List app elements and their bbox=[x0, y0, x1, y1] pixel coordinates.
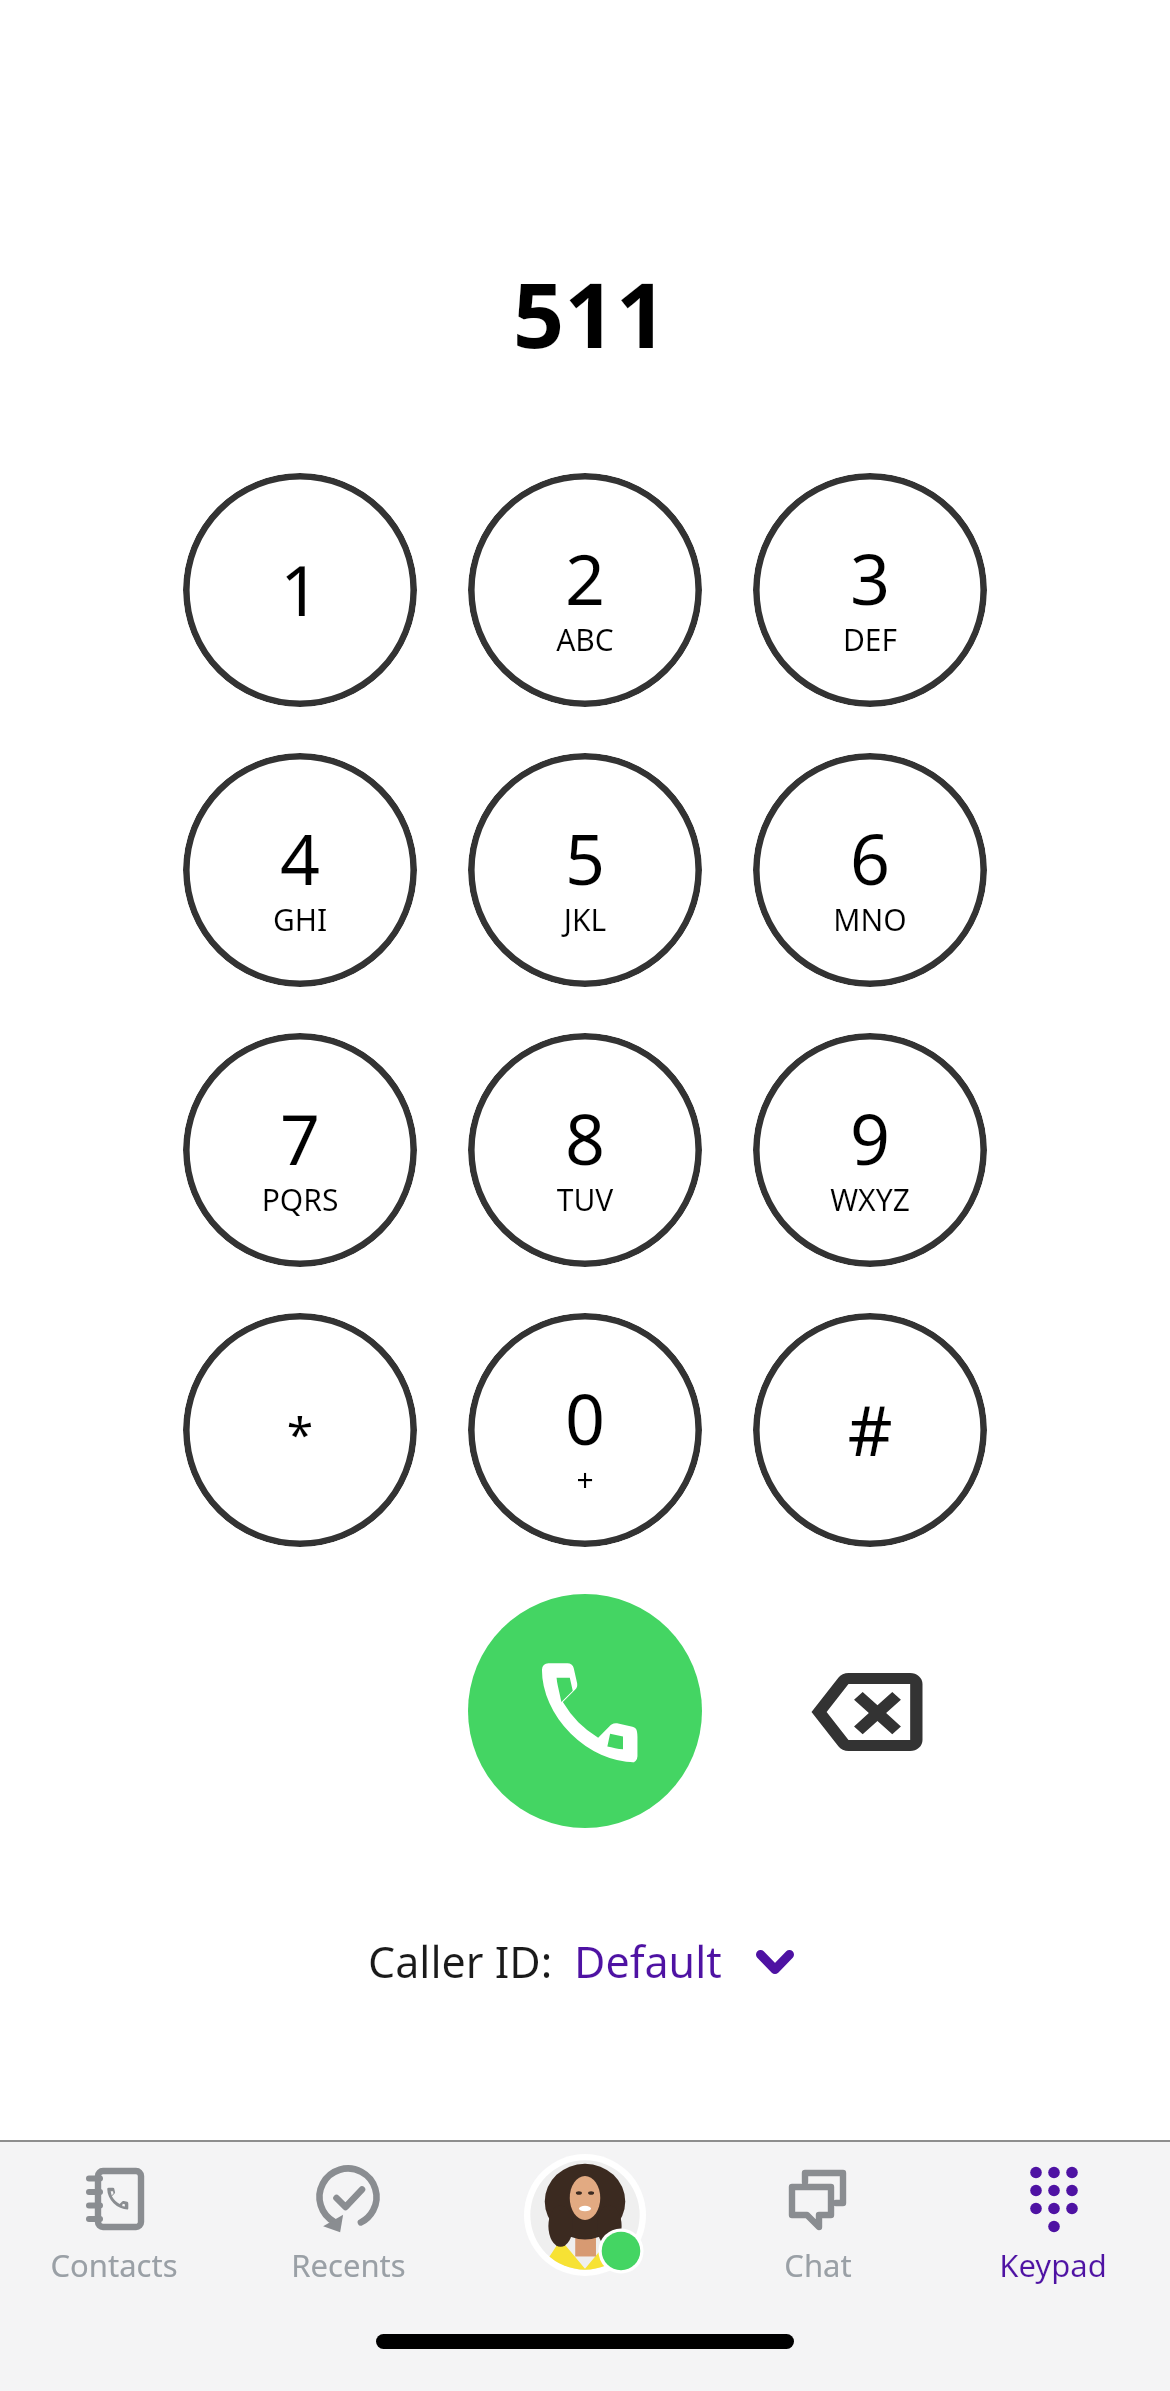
button[interactable]: Keypad bbox=[943, 2142, 1163, 2286]
button[interactable]: 6 bbox=[753, 753, 987, 987]
button[interactable]: Contacts bbox=[4, 2142, 224, 2286]
button[interactable]: 2 bbox=[468, 473, 702, 707]
staticText: 8 bbox=[468, 1090, 702, 1185]
button[interactable]: 1 bbox=[183, 473, 417, 707]
staticText: 5 bbox=[468, 810, 702, 905]
staticText: Contacts bbox=[50, 2244, 178, 2286]
staticText: Keypad bbox=[999, 2244, 1107, 2286]
button[interactable]: 3 bbox=[753, 473, 987, 707]
button[interactable]: 5 bbox=[468, 753, 702, 987]
staticText: Recents bbox=[291, 2244, 406, 2286]
button[interactable]: Chat bbox=[708, 2142, 928, 2286]
staticText: Chat bbox=[784, 2244, 852, 2286]
button[interactable]: Profile bbox=[524, 2154, 646, 2276]
staticText: JKL bbox=[468, 899, 702, 940]
button[interactable]: # bbox=[753, 1313, 987, 1547]
staticText: 3 bbox=[753, 530, 987, 625]
staticText: 9 bbox=[753, 1090, 987, 1185]
staticText: MNO bbox=[753, 899, 987, 940]
staticText: Caller ID: bbox=[368, 1932, 564, 1991]
staticText: TUV bbox=[468, 1179, 702, 1220]
staticText: # bbox=[753, 1381, 987, 1476]
button[interactable]: Caller ID: bbox=[368, 1932, 794, 1991]
button[interactable]: 7 bbox=[183, 1033, 417, 1267]
button[interactable]: * bbox=[183, 1313, 417, 1547]
staticText: 1 bbox=[183, 541, 417, 636]
button[interactable]: 9 bbox=[753, 1033, 987, 1267]
staticText: 6 bbox=[753, 810, 987, 905]
staticText: * bbox=[183, 1401, 417, 1466]
button[interactable]: Backspace bbox=[782, 1627, 952, 1797]
staticText: 4 bbox=[183, 810, 417, 905]
staticText: 7 bbox=[183, 1090, 417, 1185]
button[interactable]: Recents bbox=[238, 2142, 458, 2286]
staticText: Default bbox=[574, 1932, 722, 1991]
staticText: 511 bbox=[5, 252, 1170, 375]
button[interactable]: 0 bbox=[468, 1313, 702, 1547]
staticText: 0 bbox=[468, 1370, 702, 1465]
staticText: ABC bbox=[468, 619, 702, 660]
button[interactable]: Call bbox=[468, 1594, 702, 1828]
staticText: PQRS bbox=[183, 1179, 417, 1220]
button[interactable]: 4 bbox=[183, 753, 417, 987]
staticText: GHI bbox=[183, 899, 417, 940]
staticText: WXYZ bbox=[753, 1179, 987, 1220]
staticText: + bbox=[468, 1459, 702, 1500]
staticText: DEF bbox=[753, 619, 987, 660]
staticText: 2 bbox=[468, 530, 702, 625]
button[interactable]: 8 bbox=[468, 1033, 702, 1267]
